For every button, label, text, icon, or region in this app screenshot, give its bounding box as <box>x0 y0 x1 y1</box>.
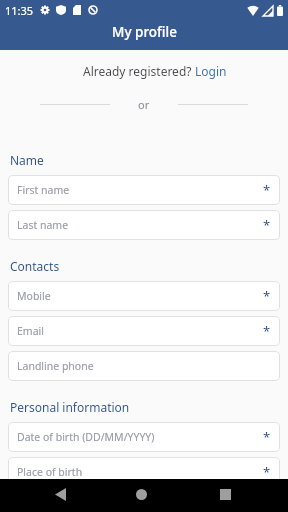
staticText: My profile <box>112 23 177 41</box>
button[interactable] <box>44 478 76 511</box>
staticText: * <box>263 463 271 481</box>
staticText: Date of birth (DD/MM/YYYY) <box>17 430 263 444</box>
button[interactable]: Mobile <box>8 281 280 311</box>
button[interactable]: First name <box>8 175 280 205</box>
staticText: First name <box>17 183 263 197</box>
staticText: Email <box>17 324 263 338</box>
staticText: Personal information <box>10 399 130 415</box>
button[interactable] <box>209 478 241 511</box>
staticText: Landline phone <box>17 359 271 373</box>
staticText: * <box>263 287 271 305</box>
staticText: 11:35 <box>5 3 34 18</box>
staticText: Mobile <box>17 289 263 303</box>
staticText: * <box>263 322 271 340</box>
staticText: Place of birth <box>17 465 263 479</box>
button[interactable] <box>125 478 157 511</box>
button[interactable]: Last name <box>8 210 280 240</box>
button[interactable]: Already registered? <box>83 63 227 79</box>
staticText: or <box>138 97 150 112</box>
button[interactable]: Email <box>8 316 280 346</box>
staticText: * <box>263 216 271 234</box>
button[interactable]: Landline phone <box>8 351 280 381</box>
staticText: Last name <box>17 218 263 232</box>
staticText: Already registered? <box>83 63 195 79</box>
staticText: * <box>263 428 271 446</box>
button[interactable]: Place of birth <box>8 457 280 487</box>
button[interactable]: Date of birth (DD/MM/YYYY) <box>8 422 280 452</box>
staticText: Contacts <box>10 258 60 274</box>
staticText: Name <box>10 152 44 168</box>
staticText: * <box>263 181 271 199</box>
staticText: Login <box>195 63 227 79</box>
